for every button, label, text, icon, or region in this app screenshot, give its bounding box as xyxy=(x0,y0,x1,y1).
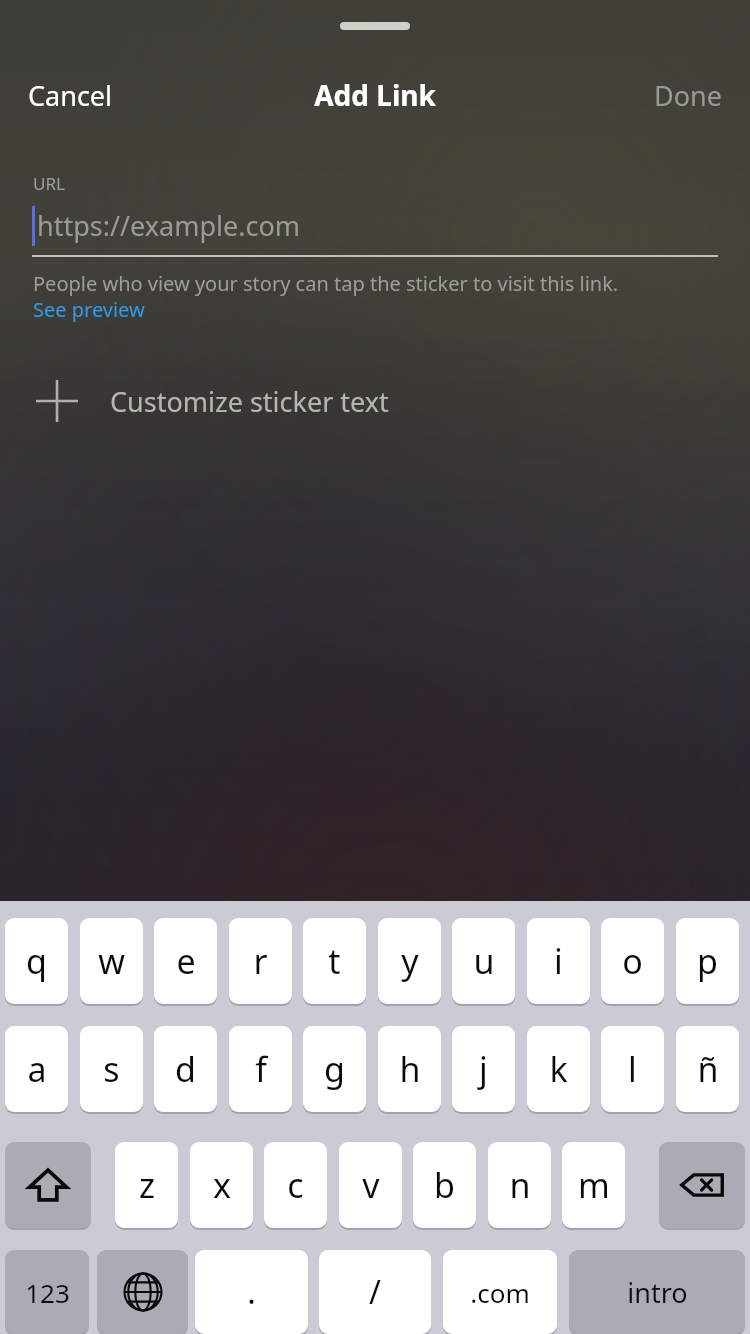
button[interactable]: g xyxy=(303,1026,366,1112)
button[interactable]: h xyxy=(378,1026,441,1112)
button[interactable]: z xyxy=(115,1142,178,1228)
staticText: b xyxy=(434,1162,455,1208)
staticText: u xyxy=(473,938,495,984)
button[interactable]: 123 xyxy=(5,1250,89,1334)
button[interactable]: b xyxy=(413,1142,476,1228)
button[interactable]: y xyxy=(378,918,441,1004)
staticText: f xyxy=(255,1046,267,1092)
staticText: z xyxy=(139,1162,155,1208)
button[interactable]: Cancel xyxy=(0,71,127,120)
staticText: w xyxy=(98,938,125,984)
staticText: Add Link xyxy=(314,76,436,114)
button[interactable]: Customize sticker text xyxy=(0,372,750,430)
staticText: . xyxy=(247,1270,256,1314)
staticText: k xyxy=(549,1046,568,1092)
staticText: h xyxy=(399,1046,421,1092)
staticText: https://example.com xyxy=(37,207,300,244)
staticText: c xyxy=(287,1162,304,1208)
button[interactable]: s xyxy=(80,1026,143,1112)
button[interactable]: / xyxy=(319,1250,431,1334)
button[interactable]: t xyxy=(303,918,366,1004)
button[interactable]: x xyxy=(190,1142,253,1228)
staticText: j xyxy=(479,1046,488,1092)
button[interactable]: ñ xyxy=(676,1026,739,1112)
button[interactable]: https://example.com xyxy=(0,198,750,256)
staticText: ñ xyxy=(697,1046,719,1092)
button[interactable]: . xyxy=(195,1250,308,1334)
button[interactable]: See preview xyxy=(0,294,165,327)
staticText: People who view your story can tap the s… xyxy=(33,270,619,297)
button[interactable]: u xyxy=(452,918,515,1004)
button[interactable]: d xyxy=(154,1026,217,1112)
staticText: y xyxy=(401,938,419,984)
button[interactable]: k xyxy=(527,1026,590,1112)
button[interactable]: .com xyxy=(443,1250,557,1334)
staticText: r xyxy=(253,938,268,984)
button[interactable]: n xyxy=(488,1142,551,1228)
button[interactable]: Change keyboard xyxy=(97,1250,188,1334)
staticText: i xyxy=(554,938,563,984)
button[interactable]: j xyxy=(452,1026,515,1112)
staticText: x xyxy=(213,1162,231,1208)
button[interactable]: r xyxy=(229,918,292,1004)
staticText: / xyxy=(369,1270,381,1314)
button[interactable]: q xyxy=(5,918,68,1004)
button[interactable]: v xyxy=(339,1142,402,1228)
button[interactable]: o xyxy=(601,918,664,1004)
staticText: Cancel xyxy=(28,77,113,114)
staticText: Customize sticker text xyxy=(110,383,389,420)
button[interactable]: Done xyxy=(640,71,750,120)
button[interactable]: f xyxy=(229,1026,292,1112)
button[interactable]: a xyxy=(5,1026,68,1112)
staticText: .com xyxy=(470,1275,530,1310)
staticText: o xyxy=(622,938,643,984)
staticText: d xyxy=(175,1046,196,1092)
staticText: Done xyxy=(654,77,722,114)
staticText: URL xyxy=(33,172,65,195)
staticText: m xyxy=(578,1162,610,1208)
staticText: t xyxy=(328,938,341,984)
button[interactable]: c xyxy=(264,1142,327,1228)
button[interactable]: p xyxy=(676,918,739,1004)
button[interactable]: e xyxy=(154,918,217,1004)
staticText: 123 xyxy=(25,1275,70,1310)
staticText: s xyxy=(103,1046,120,1092)
staticText: l xyxy=(628,1046,637,1092)
button[interactable]: m xyxy=(562,1142,625,1228)
staticText: a xyxy=(27,1046,47,1092)
staticText: q xyxy=(26,938,47,984)
staticText: See preview xyxy=(33,296,145,323)
staticText: v xyxy=(362,1162,380,1208)
button[interactable]: w xyxy=(80,918,143,1004)
staticText: intro xyxy=(627,1274,688,1311)
staticText: e xyxy=(176,938,196,984)
staticText: n xyxy=(509,1162,531,1208)
button[interactable]: i xyxy=(527,918,590,1004)
staticText: p xyxy=(697,938,718,984)
staticText: g xyxy=(324,1046,345,1092)
button[interactable]: intro xyxy=(569,1250,745,1334)
button[interactable]: l xyxy=(601,1026,664,1112)
button[interactable]: Shift xyxy=(5,1142,91,1228)
button[interactable]: Backspace xyxy=(659,1142,745,1228)
